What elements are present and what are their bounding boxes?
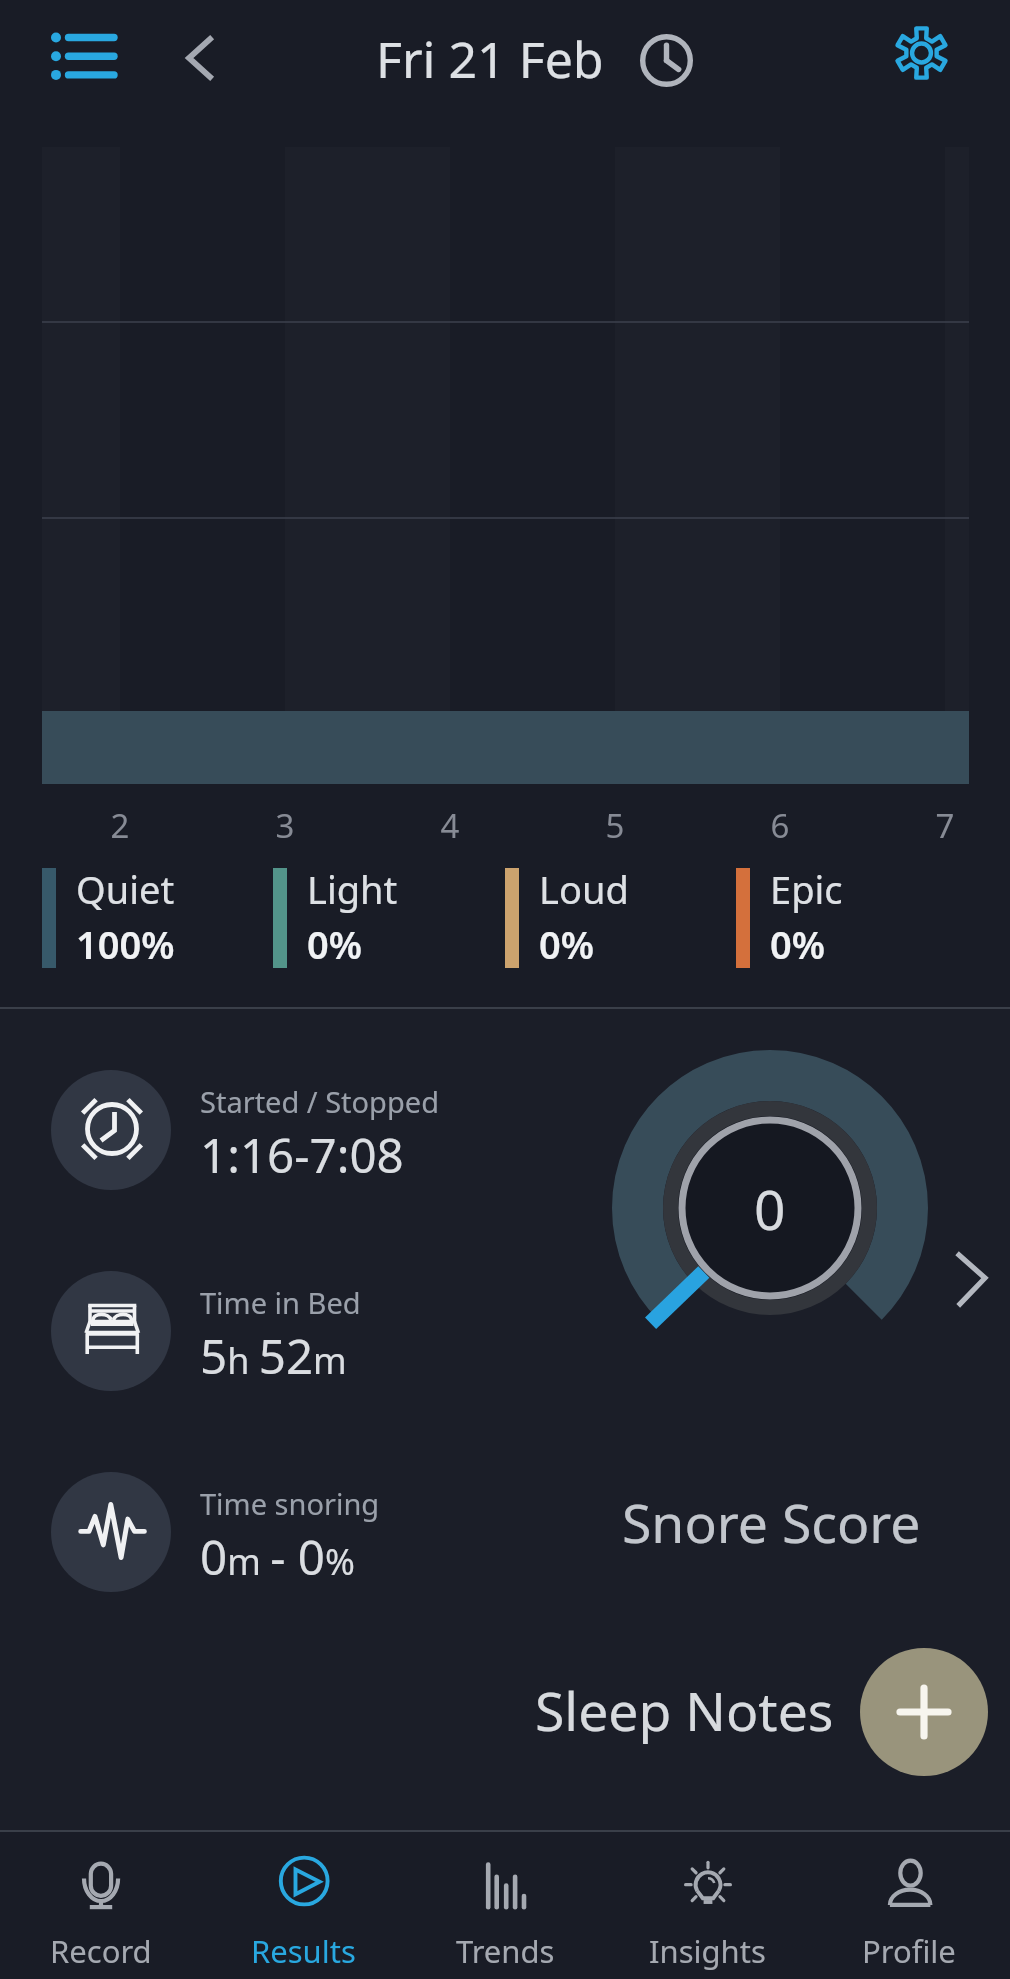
staticText: Profile [862,1930,956,1972]
staticText: Snore Score [622,1486,921,1559]
staticText: 6 [750,803,810,848]
staticText: 4 [420,803,480,848]
staticText: 0% [770,918,825,970]
staticText: Results [251,1930,356,1972]
staticText: 5 [585,803,645,848]
staticText: 1:16-7:08 [200,1122,404,1187]
button[interactable]: Next [935,1230,1005,1300]
button[interactable]: Epic [736,860,946,980]
staticText: Sleep Notes [535,1674,834,1747]
staticText: 3 [255,803,315,848]
button[interactable]: Quiet [42,860,252,980]
staticText: 7 [915,803,975,848]
button[interactable]: Results [202,1832,404,1979]
staticText: Time in Bed [200,1283,361,1322]
staticText: 0% [307,918,362,970]
staticText: 0m - 0% [200,1524,355,1589]
button[interactable]: Record [0,1832,202,1979]
staticText: Started / Stopped [200,1082,439,1121]
button[interactable]: Light [273,860,483,980]
staticText: Record [50,1930,152,1972]
staticText: 2 [90,803,150,848]
staticText: Epic [770,863,843,915]
button[interactable]: Time in Bed [51,1271,551,1391]
staticText: 0% [539,918,594,970]
staticText: Quiet [76,863,175,915]
button[interactable]: Settings [880,12,964,96]
button[interactable]: Snore score gauge [612,1050,928,1366]
button[interactable]: Menu [30,10,130,110]
staticText: Light [307,863,398,915]
button[interactable]: Trends [404,1832,606,1979]
staticText: Loud [539,863,629,915]
button[interactable]: Time [633,27,700,94]
button[interactable]: Profile [808,1832,1010,1979]
staticText: 100% [76,918,175,970]
button[interactable]: Started / Stopped [51,1070,551,1190]
staticText: Fri 21 Feb [376,25,604,93]
button[interactable]: Time snoring [51,1472,551,1592]
staticText: Time snoring [200,1484,380,1523]
button[interactable]: Back [165,20,225,80]
button[interactable]: Insights [606,1832,808,1979]
staticText: 5h 52m [200,1323,347,1388]
staticText: Trends [456,1930,555,1972]
staticText: 0 [754,1171,786,1246]
staticText: Insights [649,1930,766,1972]
button[interactable]: Loud [505,860,715,980]
button[interactable]: Sleep Notes [535,1648,988,1776]
